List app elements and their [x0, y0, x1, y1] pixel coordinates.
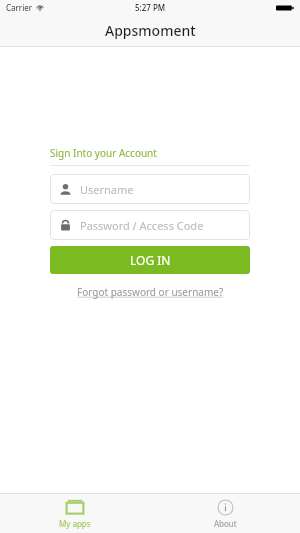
- button[interactable]: Password / Access Code: [50, 210, 250, 240]
- staticText: About: [214, 518, 237, 529]
- button[interactable]: Forgot password or username?: [75, 283, 226, 301]
- button[interactable]: My apps: [0, 494, 150, 533]
- staticText: Carrier: [6, 2, 33, 13]
- staticText: Sign Into your Account: [50, 146, 157, 160]
- button[interactable]: About: [150, 494, 300, 533]
- button[interactable]: LOG IN: [50, 246, 250, 274]
- staticText: Password / Access Code: [80, 218, 204, 233]
- staticText: My apps: [59, 518, 91, 529]
- staticText: 5:27 PM: [135, 2, 166, 13]
- other: About: [217, 499, 234, 516]
- staticText: Forgot password or username?: [77, 285, 224, 299]
- staticText: Username: [80, 182, 134, 197]
- staticText: Appsmoment: [105, 21, 196, 40]
- button[interactable]: Username: [50, 174, 250, 204]
- staticText: LOG IN: [130, 252, 171, 268]
